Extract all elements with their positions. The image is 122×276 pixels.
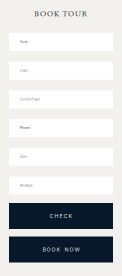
staticText: Date .: [20, 155, 29, 158]
staticText: Message .: [20, 184, 35, 187]
staticText: Phone .: [20, 126, 32, 130]
staticText: Name .: [20, 40, 30, 44]
button[interactable]: Message .: [9, 176, 113, 194]
button[interactable]: Email .: [9, 62, 113, 80]
button[interactable]: Date .: [9, 148, 113, 166]
button[interactable]: Name .: [9, 33, 113, 51]
button[interactable]: CHECK: [9, 203, 113, 229]
staticText: BOOK TOUR: [34, 8, 88, 19]
staticText: BOOK NOW: [42, 246, 79, 253]
staticText: Email .: [20, 69, 30, 72]
button[interactable]: BOOK NOW: [9, 236, 113, 262]
button[interactable]: Confirm Email .: [9, 90, 113, 108]
button[interactable]: Phone .: [9, 119, 113, 137]
staticText: Confirm Email .: [20, 98, 42, 101]
staticText: CHECK: [49, 213, 72, 219]
